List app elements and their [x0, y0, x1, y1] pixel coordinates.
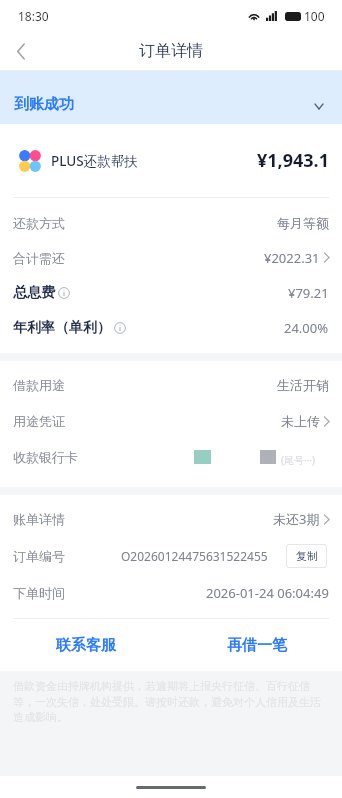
staticText: (尾号···) [281, 453, 316, 467]
button[interactable]: 用途凭证 [13, 403, 329, 439]
staticText: 联系客服 [56, 636, 116, 655]
staticText: 账单详情 [13, 511, 65, 527]
button[interactable]: 账单详情 [13, 501, 329, 537]
staticText: 借款用途 [13, 377, 65, 393]
staticText: 18:30 [18, 8, 49, 24]
staticText: 生活开销 [277, 377, 329, 393]
button[interactable]: 年利率（单利） [13, 310, 329, 345]
staticText: PLUS还款帮扶 [51, 152, 138, 170]
staticText: 还款方式 [13, 215, 65, 231]
staticText: 合计需还 [13, 250, 65, 266]
staticText: 24.00% [284, 319, 329, 337]
button[interactable]: 到账成功 [0, 71, 342, 124]
button[interactable]: 复制 [286, 544, 327, 568]
staticText: ¥1,943.1 [257, 148, 329, 173]
staticText: 年利率（单利） [13, 319, 111, 337]
staticText: 未上传 [281, 413, 320, 429]
staticText: 未还3期 [273, 510, 320, 528]
staticText: 再借一笔 [227, 636, 287, 655]
staticText: ¥2022.31 [264, 249, 320, 267]
staticText: 总息费 [13, 284, 55, 302]
staticText: O20260124475631522455 [121, 548, 268, 564]
button[interactable]: 合计需还 [13, 240, 329, 275]
button[interactable]: 联系客服 [0, 619, 171, 671]
staticText: 下单时间 [13, 585, 65, 601]
button[interactable]: 还款方式 [13, 205, 329, 240]
staticText: 每月等额 [277, 215, 329, 231]
button[interactable]: 借款用途 [13, 367, 329, 403]
button[interactable]: 收款银行卡 [13, 439, 329, 475]
staticText: 到账成功 [14, 95, 74, 114]
staticText: 2026-01-24 06:04:49 [206, 584, 329, 602]
button[interactable]: 再借一笔 [171, 619, 342, 671]
button[interactable]: Back [0, 32, 42, 70]
staticText: 复制 [296, 549, 318, 563]
staticText: 100 [304, 8, 325, 24]
staticText: 订单编号 [13, 548, 65, 564]
button[interactable]: 总息费 [13, 275, 329, 310]
staticText: ¥79.21 [288, 284, 329, 302]
staticText: 订单详情 [139, 41, 203, 61]
staticText: 借款资金由持牌机构提供，若逾期将上报央行征信、百行征信等，一次失信，处处受限。请… [13, 679, 329, 724]
staticText: 收款银行卡 [13, 449, 78, 465]
staticText: 用途凭证 [13, 413, 65, 429]
button[interactable]: PLUS还款帮扶 [19, 124, 329, 197]
button[interactable]: 下单时间 [13, 574, 329, 611]
